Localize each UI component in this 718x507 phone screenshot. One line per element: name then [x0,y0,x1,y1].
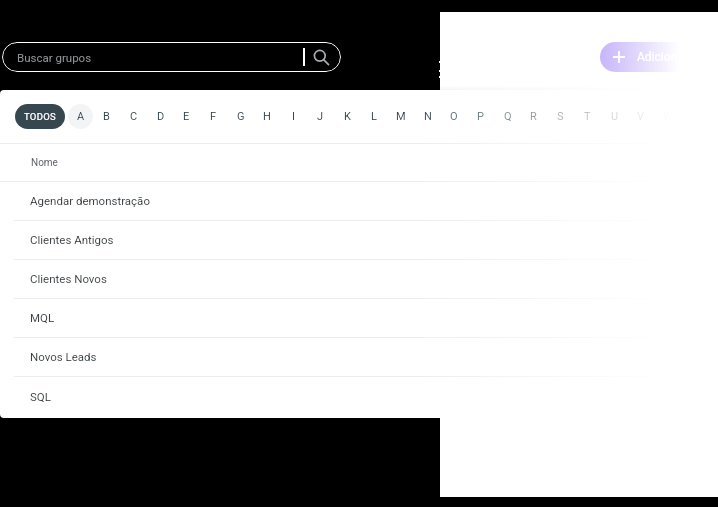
button[interactable]: Clientes Antigos [0,221,718,260]
staticText: Adicionar [637,50,688,64]
staticText: R [530,110,537,123]
button[interactable]: H [254,104,279,129]
staticText: Q [504,110,512,123]
staticText: Buscar grupos [17,51,92,64]
staticText: P [477,110,484,123]
staticText: O [450,110,458,123]
button[interactable]: I [281,104,306,129]
staticText: F [210,110,217,123]
button[interactable]: O [441,104,466,129]
button[interactable]: Q [495,104,520,129]
staticText: H [263,110,271,123]
staticText: M [396,110,406,123]
staticText: MQL [30,311,55,324]
staticText: K [344,110,351,123]
staticText: TODOS [24,111,56,122]
button[interactable]: Novos Leads [0,338,718,377]
button[interactable]: Adicionar [600,42,718,72]
button[interactable]: G [228,104,253,129]
staticText: Novos Leads [30,350,97,363]
button[interactable]: D [148,104,173,129]
staticText: Agendar demonstração [30,194,150,207]
button[interactable]: TODOS [15,104,65,129]
button[interactable]: T [575,104,600,129]
staticText: V [637,110,645,123]
button[interactable]: M [388,104,413,129]
button[interactable]: MQL [0,299,718,338]
button[interactable]: N [415,104,440,129]
staticText: B [103,110,110,123]
button[interactable]: F [201,104,226,129]
staticText: D [157,110,165,123]
button[interactable]: Buscar grupos [2,42,341,72]
button[interactable]: C [121,104,146,129]
button[interactable]: Agendar demonstração [0,182,718,221]
staticText: U [611,110,619,123]
staticText: L [371,110,377,123]
button[interactable]: J [308,104,333,129]
staticText: I [292,110,295,123]
staticText: C [130,110,138,123]
button[interactable]: L [361,104,386,129]
staticText: Nome [31,157,58,169]
staticText: N [424,110,432,123]
button[interactable]: SQL [0,377,718,418]
staticText: G [237,110,245,123]
button[interactable]: B [94,104,119,129]
button[interactable]: E [174,104,199,129]
button[interactable]: R [521,104,546,129]
button[interactable]: U [602,104,627,129]
button[interactable]: Clientes Novos [0,260,718,299]
button[interactable]: S [548,104,573,129]
staticText: SQL [30,390,51,403]
staticText: E [183,110,190,123]
staticText: Clientes Novos [30,272,107,285]
button[interactable]: K [335,104,360,129]
button[interactable]: P [468,104,493,129]
staticText: T [584,110,591,123]
staticText: Clientes Antigos [30,233,114,246]
button[interactable]: V [628,104,653,129]
staticText: A [77,110,85,123]
other: Search [310,47,330,67]
staticText: S [557,110,564,123]
staticText: J [317,110,324,123]
button[interactable]: A [68,104,93,129]
